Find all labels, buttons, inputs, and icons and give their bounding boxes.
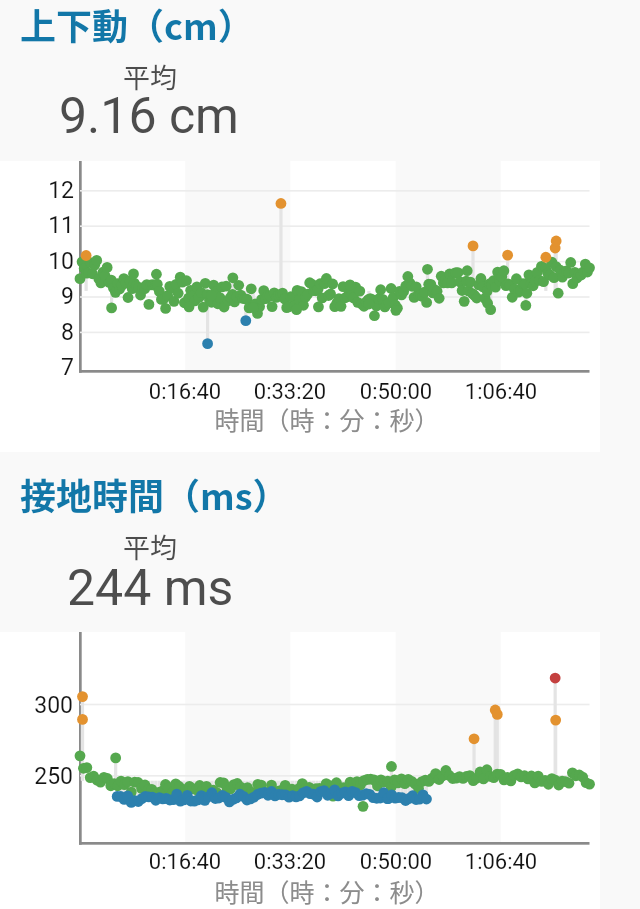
staticText: 1:06:40 bbox=[441, 379, 561, 405]
staticText: 0:33:20 bbox=[230, 379, 350, 405]
staticText: 0:50:00 bbox=[336, 379, 456, 405]
staticText: 平均 bbox=[123, 57, 177, 96]
staticText: 9.16 cm bbox=[59, 87, 239, 146]
staticText: 時間（時：分：秒） bbox=[177, 401, 477, 437]
staticText: 0:16:40 bbox=[125, 849, 245, 875]
staticText: 1:06:40 bbox=[441, 849, 561, 875]
staticText: 10 bbox=[20, 248, 74, 275]
staticText: 0:33:20 bbox=[230, 849, 350, 875]
staticText: 上下動（cm） bbox=[20, 0, 254, 50]
staticText: 0:50:00 bbox=[336, 849, 456, 875]
staticText: 11 bbox=[20, 212, 74, 239]
button[interactable]: 上下動（cm） bbox=[0, 0, 640, 161]
staticText: 0:16:40 bbox=[125, 379, 245, 405]
staticText: 244 ms bbox=[67, 559, 234, 618]
button[interactable]: 接地時間（ms） bbox=[0, 452, 640, 632]
staticText: 平均 bbox=[123, 527, 177, 566]
staticText: 接地時間（ms） bbox=[20, 468, 289, 520]
staticText: 時間（時：分：秒） bbox=[177, 873, 477, 909]
staticText: 9 bbox=[20, 283, 74, 310]
staticText: 7 bbox=[20, 354, 74, 381]
staticText: 250 bbox=[10, 763, 73, 790]
staticText: 8 bbox=[20, 319, 74, 346]
staticText: 12 bbox=[20, 177, 74, 204]
staticText: 300 bbox=[10, 692, 73, 719]
